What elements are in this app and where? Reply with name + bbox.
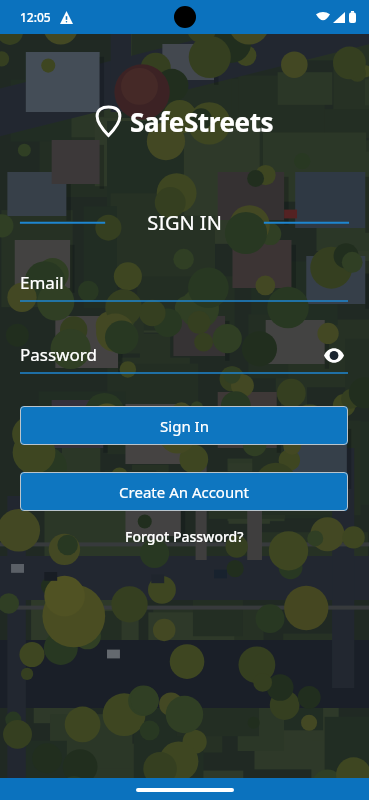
button[interactable]: Sign In xyxy=(20,406,348,445)
button[interactable]: Show password xyxy=(320,341,348,369)
staticText: Create An Account xyxy=(119,482,249,502)
button[interactable]: Email xyxy=(20,271,348,302)
staticText: SIGN IN xyxy=(147,209,222,236)
staticText: Sign In xyxy=(160,416,209,436)
staticText: Email xyxy=(20,271,64,294)
staticText: Forgot Password? xyxy=(125,527,244,546)
button[interactable]: Password xyxy=(20,343,348,374)
staticText: 12:05 xyxy=(20,9,51,25)
staticText: SafeStreets xyxy=(130,104,274,139)
button[interactable]: Create An Account xyxy=(20,472,348,511)
staticText: Password xyxy=(20,343,97,366)
button[interactable]: Forgot Password? xyxy=(115,524,254,549)
